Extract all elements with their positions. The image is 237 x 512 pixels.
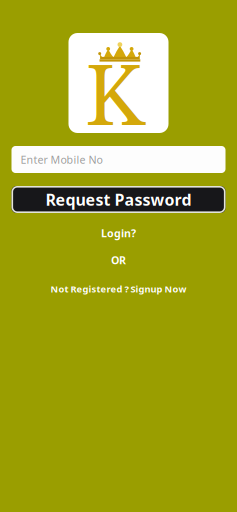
staticText: K xyxy=(84,50,144,146)
button[interactable]: Login? xyxy=(101,227,136,239)
button[interactable]: Not Registered ? Signup Now xyxy=(50,283,186,295)
staticText: Login? xyxy=(101,226,136,240)
staticText: OR xyxy=(111,253,126,267)
staticText: Request Password xyxy=(45,189,191,210)
staticText: Enter Mobile No xyxy=(20,152,102,167)
button[interactable]: Request Password xyxy=(11,186,225,213)
staticText: Not Registered ? Signup Now xyxy=(50,283,186,295)
